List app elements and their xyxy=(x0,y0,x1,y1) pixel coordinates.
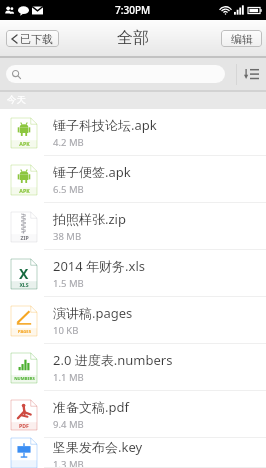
staticText: 10 KB xyxy=(53,324,79,337)
button[interactable]: APK xyxy=(0,156,266,203)
staticText: 4.2 MB xyxy=(53,136,84,149)
staticText: 已下载 xyxy=(20,32,53,46)
staticText: 拍照样张.zip xyxy=(53,210,126,228)
staticText: XLS xyxy=(19,281,29,288)
button[interactable]: NUMBERS xyxy=(0,344,266,391)
staticText: 坚果发布会.key xyxy=(53,438,143,456)
button[interactable]: 坚果发布会.key xyxy=(0,438,266,468)
button[interactable]: ZIP xyxy=(0,203,266,250)
staticText: PAGES xyxy=(18,329,31,335)
staticText: PDF xyxy=(19,422,29,429)
staticText: 9.4 MB xyxy=(53,418,84,431)
staticText: 演讲稿.pages xyxy=(53,304,133,322)
staticText: 2014 年财务.xls xyxy=(53,257,146,275)
button[interactable]: APK xyxy=(0,109,266,156)
staticText: 1.3 MB xyxy=(53,458,84,468)
button[interactable]: PDF xyxy=(0,391,266,438)
staticText: X xyxy=(19,264,29,283)
staticText: 锤子便签.apk xyxy=(53,163,131,181)
staticText: ZIP xyxy=(20,234,29,241)
staticText: 2.0 进度表.numbers xyxy=(53,351,173,369)
staticText: 1.5 MB xyxy=(53,277,84,290)
button[interactable]: PAGES xyxy=(0,297,266,344)
staticText: 编辑 xyxy=(231,32,253,46)
staticText: APK xyxy=(19,140,30,147)
staticText: 38 MB xyxy=(53,230,82,243)
staticText: 锤子科技论坛.apk xyxy=(53,116,157,134)
staticText: 准备文稿.pdf xyxy=(53,398,129,416)
button[interactable]: Sort xyxy=(237,58,266,90)
button[interactable]: 已下载 xyxy=(6,30,59,47)
staticText: NUMBERS xyxy=(14,376,35,382)
staticText: 1.1 MB xyxy=(53,371,84,384)
staticText: 6.5 MB xyxy=(53,183,84,196)
button[interactable]: X xyxy=(0,250,266,297)
staticText: 7:30PM xyxy=(115,3,151,17)
button[interactable]: 编辑 xyxy=(221,30,262,47)
staticText: 今天 xyxy=(7,94,26,106)
staticText: APK xyxy=(19,187,30,194)
staticText: 全部 xyxy=(117,28,149,48)
button[interactable] xyxy=(6,65,225,83)
